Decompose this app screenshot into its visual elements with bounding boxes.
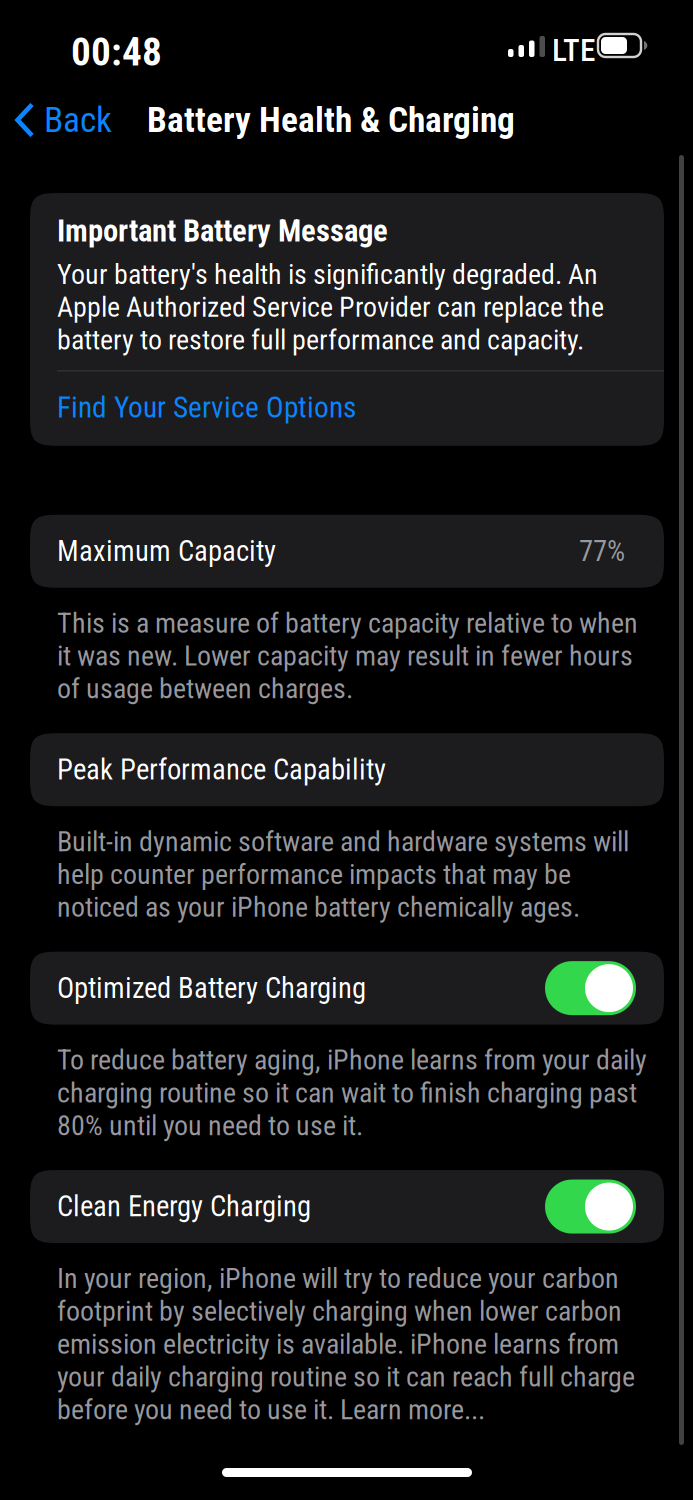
staticText: This is a measure of battery capacity re… [57,607,638,705]
staticText: Peak Performance Capability [57,753,386,786]
button[interactable]: Optimized Battery Charging [30,952,664,1025]
button[interactable]: Clean Energy Charging [30,1170,664,1243]
staticText: 00:48 [71,29,162,75]
staticText: Maximum Capacity [57,534,276,568]
staticText: Important Battery Message [57,213,388,249]
staticText: Clean Energy Charging [57,1190,311,1223]
button[interactable]: Peak Performance Capability [30,733,664,806]
staticText: To reduce battery aging, iPhone learns f… [57,1044,647,1142]
staticText: Back [44,99,112,141]
staticText: 77% [579,534,625,568]
staticText: Find Your Service Options [57,390,356,425]
button[interactable]: Find Your Service Options [30,371,664,446]
staticText: In your region, iPhone will try to reduc… [57,1262,635,1426]
staticText: Optimized Battery Charging [57,971,366,1005]
button[interactable]: Back [0,88,124,152]
staticText: LTE [552,32,595,69]
staticText: Your battery's health is significantly d… [57,258,604,356]
button[interactable]: Maximum Capacity [30,515,664,588]
staticText: Battery Health & Charging [147,99,515,141]
staticText: Built-in dynamic software and hardware s… [57,825,629,924]
